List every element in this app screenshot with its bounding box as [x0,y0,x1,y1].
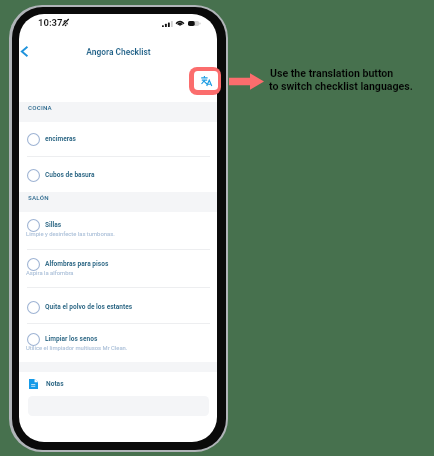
button[interactable]: Alfombras para pisos [19,255,217,286]
staticText: Aspira la alfombra [26,270,74,277]
staticText: encimeras [45,135,76,143]
button[interactable]: Limpiar los senos [19,330,217,361]
staticText: Cubos de basura [45,171,95,179]
button[interactable]: Cubos de basura [19,166,217,185]
staticText: Limpiar los senos [45,335,98,343]
staticText: Sillas [45,221,62,229]
button[interactable]: encimeras [19,130,217,149]
button[interactable]: Sillas [19,216,217,247]
staticText: Angora Checklist [86,47,151,57]
staticText: SALÓN [28,194,49,201]
staticText: Utilice el limpiador multiusos Mr Clean. [26,345,128,352]
staticText: Use the translation button [270,67,394,79]
button[interactable]: Translate [189,67,221,95]
button[interactable]: Notas [26,376,86,391]
staticText: Notas [46,380,64,388]
staticText: COCINA [28,104,52,111]
staticText: Limpie y desinfecte las tumbonas. [26,231,115,238]
staticText: 10:37 [38,17,63,28]
staticText: to switch checklist languages. [269,80,413,92]
button[interactable]: Quita el polvo de los estantes [19,298,217,317]
button[interactable]: Back [19,41,41,63]
staticText: Alfombras para pisos [45,260,109,268]
staticText: Quita el polvo de los estantes [45,303,133,311]
